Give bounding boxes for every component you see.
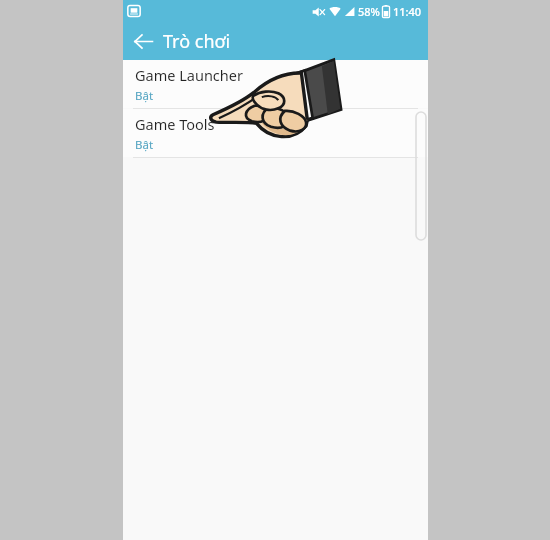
staticText: Bật (135, 137, 154, 153)
staticText: Bật (135, 88, 154, 104)
button[interactable]: Game Tools (123, 109, 428, 157)
staticText: Game Tools (135, 114, 215, 134)
staticText: 11:40 (393, 4, 422, 19)
staticText: Trò chơi (163, 29, 231, 54)
staticText: Game Launcher (135, 65, 243, 85)
button[interactable]: Back (127, 25, 159, 57)
button[interactable]: Game Launcher (123, 60, 428, 108)
staticText: 58% (358, 4, 380, 19)
